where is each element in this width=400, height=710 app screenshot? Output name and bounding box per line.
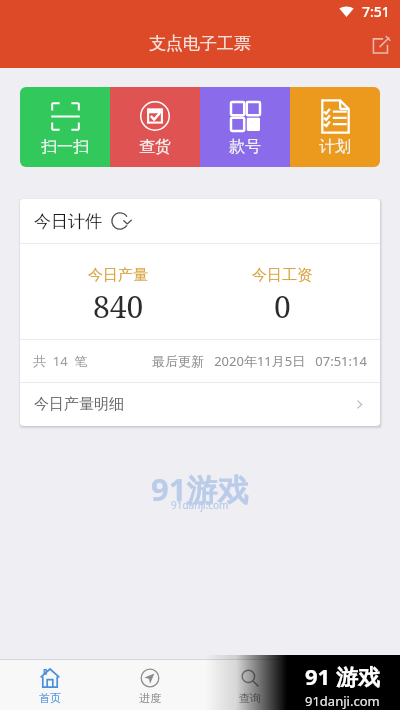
button[interactable]: 款号	[200, 87, 290, 167]
staticText: 查货	[139, 137, 171, 157]
staticText: 扫一扫	[41, 137, 89, 157]
button[interactable]: Edit	[366, 30, 396, 60]
staticText: 查询	[239, 691, 261, 705]
button[interactable]: 首页	[0, 660, 100, 710]
staticText: 91 游戏	[305, 661, 380, 691]
staticText: 支点电子工票	[149, 33, 251, 54]
staticText: 款号	[229, 137, 261, 157]
staticText: 进度	[139, 691, 161, 705]
button[interactable]: 查货	[110, 87, 200, 167]
button[interactable]: 计划	[290, 87, 380, 167]
staticText: 0	[274, 286, 291, 327]
staticText: 计划	[319, 137, 351, 157]
staticText: 91danji.com	[171, 498, 229, 512]
button[interactable]: 扫一扫	[20, 87, 110, 167]
staticText: 共 14 笔	[33, 352, 88, 370]
button[interactable]: 查询	[200, 660, 300, 710]
button[interactable]: Refresh	[108, 209, 132, 233]
staticText: 91游戏	[151, 468, 249, 510]
staticText: 最后更新 2020年11月5日 07:51:14	[152, 352, 367, 370]
staticText: 7:51	[362, 2, 390, 21]
staticText: 840	[93, 286, 144, 327]
staticText: 今日产量	[88, 266, 148, 285]
staticText: 91danji.com	[305, 692, 380, 710]
button[interactable]: 我的	[300, 660, 400, 710]
staticText: 首页	[39, 691, 61, 705]
staticText: 今日工资	[252, 266, 312, 285]
staticText: 今日产量明细	[34, 395, 124, 414]
button[interactable]: 进度	[100, 660, 200, 710]
staticText: 今日计件	[34, 211, 102, 232]
staticText: 我的	[339, 691, 361, 705]
button[interactable]: 今日产量明细	[20, 383, 380, 426]
